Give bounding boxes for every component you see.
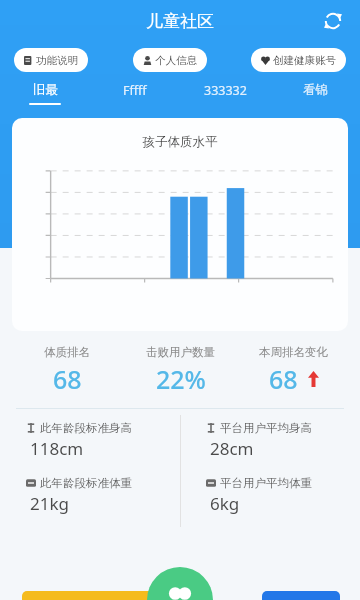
staticText: 孩子体质水平 [12, 134, 348, 150]
button[interactable]: 看锦 [270, 82, 360, 103]
staticText: 平台用户平均身高 [220, 421, 312, 435]
staticText: 28cm [210, 437, 254, 460]
staticText: 22% [156, 362, 206, 396]
staticText: 平台用户平均体重 [220, 476, 312, 490]
button[interactable]: 体质排名 [10, 345, 124, 396]
staticText: 6kg [210, 492, 240, 515]
button[interactable]: 孩子体质水平 [12, 118, 348, 331]
button[interactable]: Add [147, 567, 213, 600]
staticText: 体质排名 [44, 345, 90, 359]
staticText: 68 [53, 362, 82, 396]
staticText: 333332 [204, 82, 247, 99]
button[interactable]: Fffff [90, 82, 180, 104]
staticText: 看锦 [303, 82, 328, 98]
staticText: 此年龄段标准体重 [40, 476, 132, 490]
button[interactable]: 功能说明 [14, 48, 88, 72]
staticText: 儿童社区 [146, 11, 214, 32]
staticText: 功能说明 [36, 54, 78, 67]
staticText: 118cm [30, 437, 84, 460]
button[interactable]: 个人信息 [133, 48, 207, 72]
staticText: 创建健康账号 [273, 54, 336, 67]
button[interactable]: 333332 [180, 82, 270, 104]
button[interactable]: 创建健康账号 [251, 48, 346, 72]
staticText: 本周排名变化 [259, 345, 328, 359]
button[interactable]: Yellow action [22, 591, 178, 600]
button[interactable]: 击败用户数量 [124, 345, 237, 396]
staticText: Fffff [123, 82, 147, 99]
staticText: 21kg [30, 492, 69, 515]
button[interactable]: 旧最 [0, 82, 90, 105]
staticText: 此年龄段标准身高 [40, 421, 132, 435]
staticText: 个人信息 [155, 54, 197, 67]
staticText: 68 [269, 362, 298, 396]
staticText: 击败用户数量 [146, 345, 215, 359]
button[interactable]: Refresh [318, 6, 348, 36]
button[interactable]: Blue action [262, 591, 340, 600]
staticText: 旧最 [33, 82, 58, 98]
button[interactable]: 本周排名变化 [237, 345, 350, 396]
